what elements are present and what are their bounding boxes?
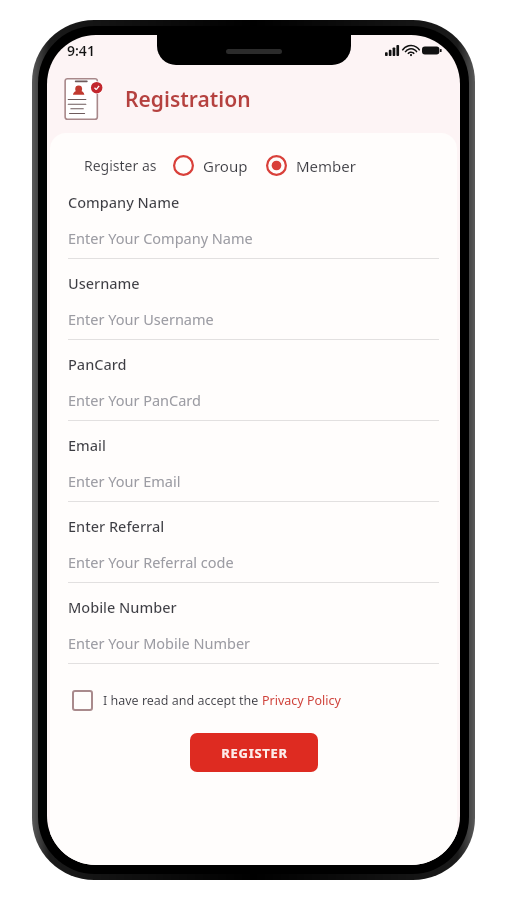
staticText: Enter Your Username [68,309,214,329]
staticText: REGISTER [221,744,288,762]
staticText: PanCard [68,354,127,374]
button[interactable]: Enter Your Email [68,471,439,501]
staticText: Username [68,273,140,293]
staticText: Company Name [68,192,180,212]
other: Accept privacy policy checkbox [72,690,93,711]
staticText: Enter Your Company Name [68,228,253,248]
staticText: Enter Referral [68,516,165,536]
staticText: Registration [125,85,251,114]
button[interactable]: Privacy Policy [262,692,341,709]
button[interactable]: Enter Your Username [68,309,439,339]
staticText: Register as [84,156,157,175]
button[interactable]: Member [266,155,356,176]
staticText: Enter Your Email [68,471,181,491]
staticText: Email [68,435,106,455]
staticText: Enter Your PanCard [68,390,201,410]
staticText: Enter Your Mobile Number [68,633,251,653]
staticText: Group [203,156,248,176]
button[interactable]: Enter Your Company Name [68,228,439,258]
staticText: Enter Your Referral code [68,552,234,572]
button[interactable]: Accept privacy policy checkbox [68,690,439,711]
staticText: 9:41 [67,41,95,60]
button[interactable]: Enter Your Mobile Number [68,633,439,663]
button[interactable]: Enter Your Referral code [68,552,439,582]
staticText: Member [296,156,356,176]
staticText: I have read and accept the [103,692,262,709]
button[interactable]: Enter Your PanCard [68,390,439,420]
button[interactable]: REGISTER [190,733,318,772]
button[interactable]: Group [173,155,248,176]
staticText: Mobile Number [68,597,177,617]
